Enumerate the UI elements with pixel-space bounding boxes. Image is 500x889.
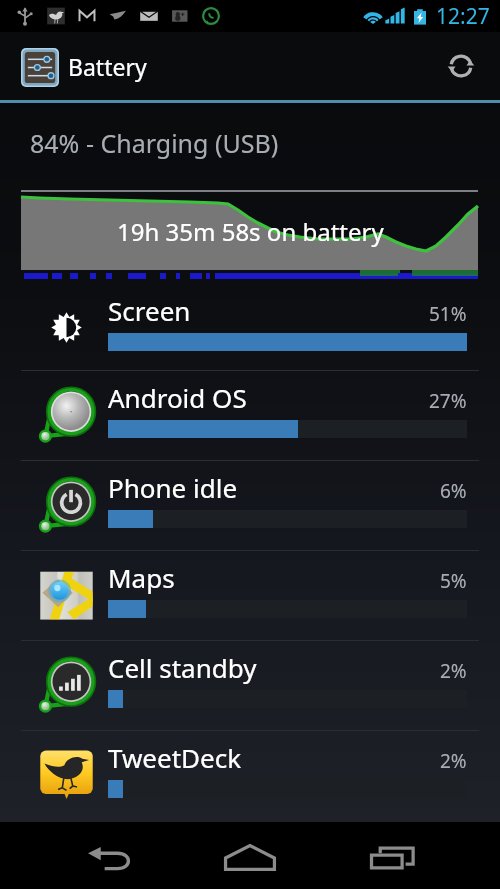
staticText: Screen [108,293,191,328]
staticText: 5% [440,568,467,594]
staticText: 6% [440,478,467,504]
button[interactable]: Recents [345,822,437,889]
button[interactable]: Cell standby [0,641,500,730]
staticText: TweetDeck [108,740,242,775]
staticText: Phone idle [108,470,238,505]
button[interactable]: Maps [0,551,500,640]
button[interactable]: Phone idle [0,461,500,550]
staticText: 27% [429,388,467,414]
button[interactable]: Android OS [0,371,500,460]
staticText: 12:27 [436,2,490,31]
button[interactable]: Refresh [427,32,495,100]
button[interactable]: Home [204,822,296,889]
staticText: Android OS [108,380,247,415]
staticText: Cell standby [108,650,257,685]
staticText: 84% - Charging (USB) [30,126,279,160]
staticText: 19h 35m 58s on battery [117,215,384,248]
staticText: Maps [108,560,175,595]
staticText: 2% [440,658,467,684]
staticText: Battery [68,51,147,82]
button[interactable]: Screen [0,287,500,370]
staticText: 51% [429,301,467,327]
button[interactable]: Back [64,822,156,889]
button[interactable]: TweetDeck [0,731,500,820]
staticText: 2% [440,748,467,774]
